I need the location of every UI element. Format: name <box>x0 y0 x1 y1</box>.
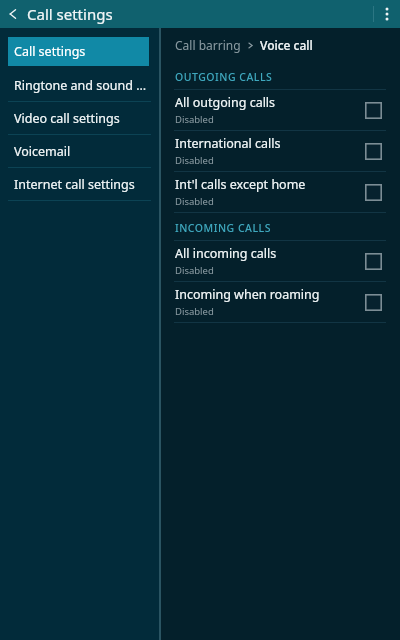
staticText: Voice call <box>260 37 313 53</box>
staticText: Disabled <box>175 305 214 318</box>
staticText: All outgoing calls <box>175 94 276 111</box>
button[interactable]: Int'l calls except home <box>161 172 400 212</box>
staticText: Int'l calls except home <box>175 176 306 193</box>
button[interactable]: All outgoing calls <box>161 90 400 130</box>
staticText: Disabled <box>175 195 214 208</box>
staticText: Call barring <box>175 37 241 53</box>
staticText: Disabled <box>175 154 214 167</box>
button[interactable]: Video call settings <box>0 102 159 134</box>
button[interactable]: All incoming calls checkbox, unchecked <box>360 248 386 274</box>
staticText: Call settings <box>14 43 86 60</box>
button[interactable]: Voicemail <box>0 135 159 167</box>
staticText: All incoming calls <box>175 245 277 262</box>
staticText: Ringtone and sound setti.. <box>14 77 151 94</box>
staticText: Disabled <box>175 264 214 277</box>
staticText: INCOMING CALLS <box>175 221 271 235</box>
staticText: International calls <box>175 135 281 152</box>
staticText: Incoming when roaming <box>175 286 320 303</box>
button[interactable]: Incoming when roaming checkbox, unchecke… <box>360 289 386 315</box>
button[interactable]: International calls <box>161 131 400 171</box>
button[interactable]: More options <box>374 0 400 28</box>
staticText: Internet call settings <box>14 176 135 193</box>
button[interactable]: Call barring <box>161 28 400 62</box>
button[interactable]: Navigate up, Call settings <box>0 0 121 28</box>
button[interactable]: Int'l calls except home checkbox, unchec… <box>360 179 386 205</box>
button[interactable]: All outgoing calls checkbox, unchecked <box>360 97 386 123</box>
staticText: OUTGOING CALLS <box>175 70 273 84</box>
button[interactable]: International calls checkbox, unchecked <box>360 138 386 164</box>
button[interactable]: All incoming calls <box>161 241 400 281</box>
staticText: Call settings <box>27 4 113 24</box>
staticText: Video call settings <box>14 110 120 127</box>
staticText: Disabled <box>175 113 214 126</box>
staticText: Voicemail <box>14 143 71 160</box>
button[interactable]: Incoming when roaming <box>161 282 400 322</box>
button[interactable]: Internet call settings <box>0 168 159 200</box>
button[interactable]: Call settings <box>8 37 149 66</box>
button[interactable]: Ringtone and sound setti.. <box>0 69 159 101</box>
